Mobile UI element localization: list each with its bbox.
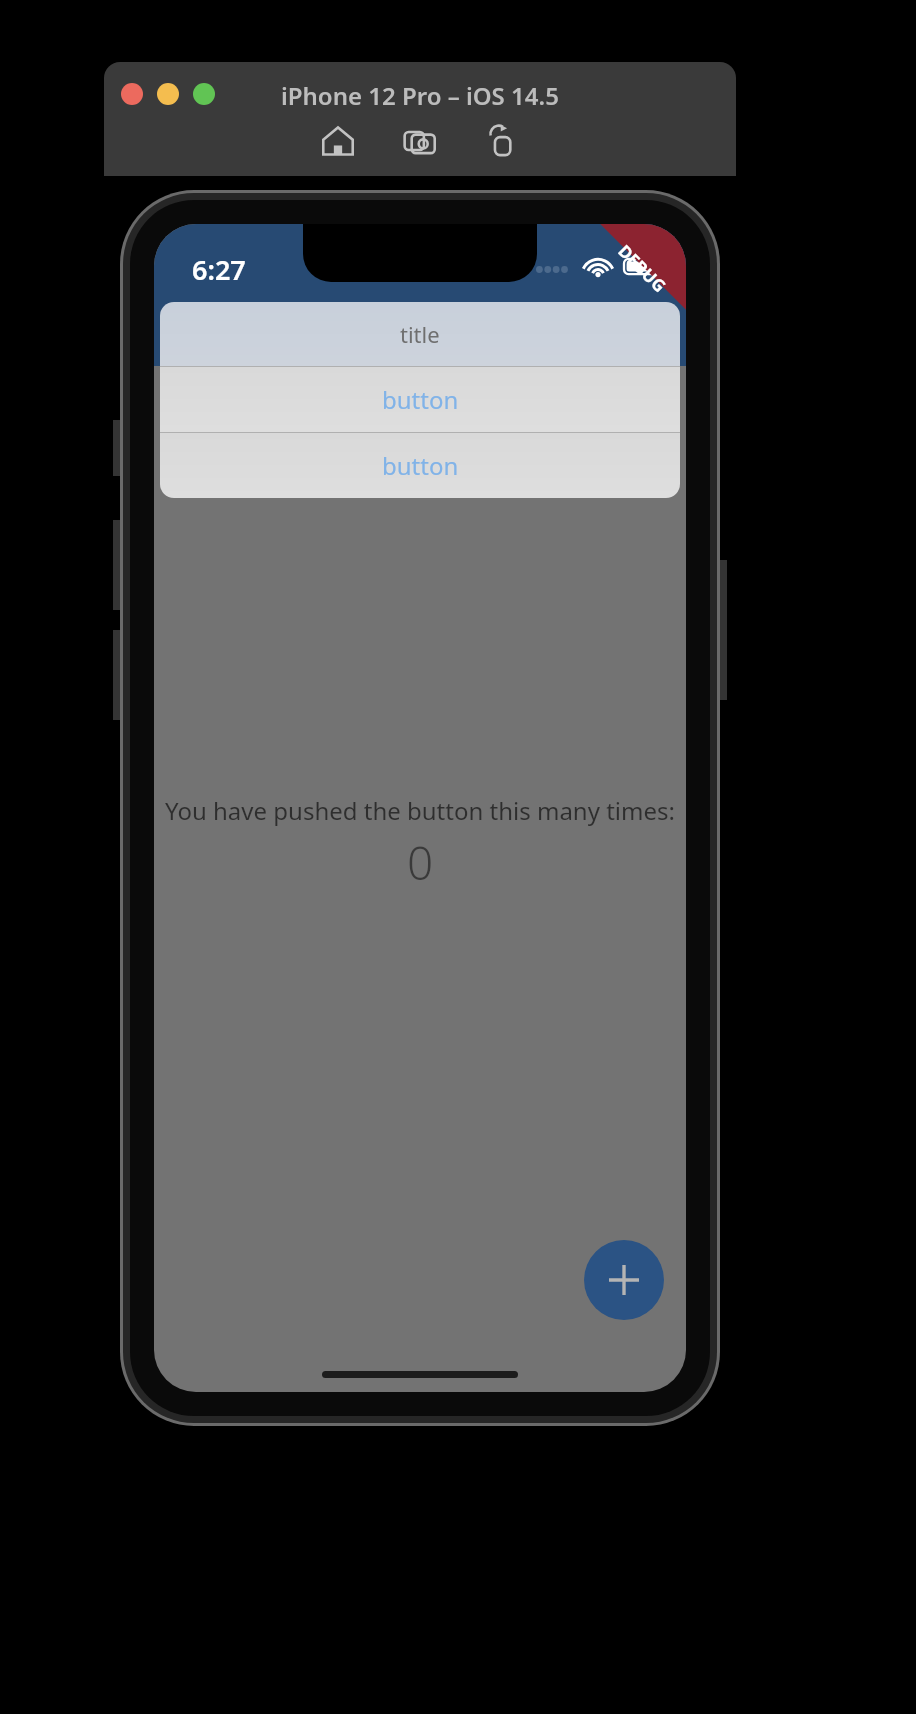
staticText: button xyxy=(382,383,459,416)
staticText: iPhone 12 Pro – iOS 14.5 xyxy=(281,79,559,112)
button[interactable]: Rotate xyxy=(479,118,525,164)
button[interactable]: Increment counter xyxy=(584,1240,664,1320)
staticText: 6:27 xyxy=(192,251,246,288)
button[interactable]: Minimize window xyxy=(157,83,179,105)
staticText: DEBUG xyxy=(613,239,671,297)
button[interactable]: Screenshot xyxy=(397,118,443,164)
button[interactable]: button xyxy=(160,367,680,432)
button[interactable]: button xyxy=(160,433,680,498)
staticText: button xyxy=(382,449,459,482)
staticText: You have pushed the button this many tim… xyxy=(165,794,675,827)
button[interactable]: Close window xyxy=(121,83,143,105)
button[interactable]: Zoom window xyxy=(193,83,215,105)
staticText: title xyxy=(400,319,440,349)
staticText: 0 xyxy=(407,831,434,894)
button[interactable]: Home xyxy=(315,118,361,164)
